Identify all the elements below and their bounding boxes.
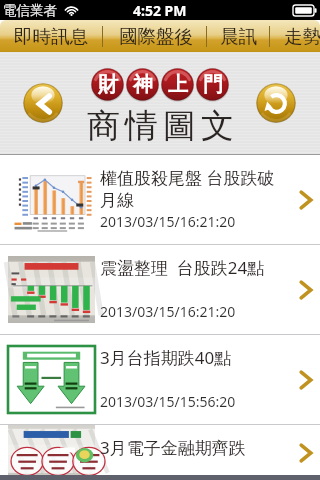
button[interactable]: 權值股殺尾盤 台股跌破月線: [0, 155, 320, 244]
button[interactable]: Back: [23, 83, 63, 123]
staticText: 情: [125, 105, 158, 147]
button[interactable]: 震盪整理 台股跌24點: [0, 245, 320, 334]
button[interactable]: 3月台指期跌40點: [0, 335, 320, 424]
staticText: 圖: [163, 105, 196, 147]
button[interactable]: Refresh: [256, 83, 296, 123]
button[interactable]: 晨訊: [220, 20, 257, 52]
staticText: 2013/03/15/15:56:20: [100, 392, 236, 411]
staticText: 晨訊: [220, 25, 257, 48]
staticText: 電信業者: [3, 2, 57, 19]
staticText: 4:52 PM: [133, 1, 187, 20]
staticText: 國際盤後: [119, 25, 193, 48]
staticText: 權值股殺尾盤 台股跌破月線: [100, 166, 286, 210]
staticText: 走勢: [284, 25, 320, 48]
staticText: 財: [98, 72, 118, 97]
staticText: 上: [168, 72, 188, 97]
button[interactable]: 走勢: [284, 20, 320, 52]
staticText: 商: [87, 105, 120, 147]
staticText: 文: [201, 105, 234, 147]
button[interactable]: 3月電子金融期齊跌: [0, 425, 320, 480]
staticText: 2013/03/15/16:21:20: [100, 302, 236, 321]
staticText: 2013/03/15/16:21:20: [100, 212, 236, 231]
staticText: 3月電子金融期齊跌: [100, 436, 246, 459]
staticText: 神: [133, 72, 153, 97]
button[interactable]: 國際盤後: [119, 20, 193, 52]
staticText: 3月台指期跌40點: [100, 346, 232, 369]
staticText: 門: [203, 72, 223, 97]
button[interactable]: 即時訊息: [14, 20, 88, 52]
staticText: 即時訊息: [14, 25, 88, 48]
staticText: 震盪整理 台股跌24點: [100, 256, 265, 279]
